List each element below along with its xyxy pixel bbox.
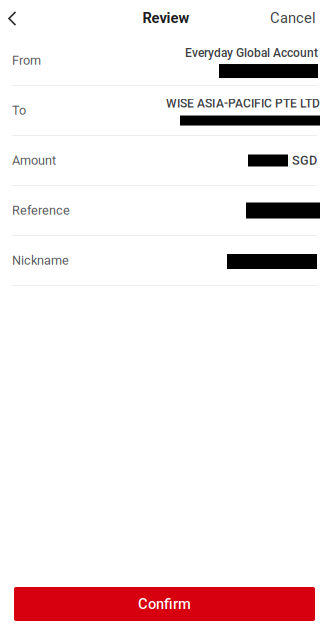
staticText: To (12, 103, 26, 118)
staticText: Nickname (12, 253, 69, 268)
staticText: Reference (12, 203, 70, 218)
staticText: Amount (12, 153, 56, 168)
staticText: Confirm (138, 595, 191, 613)
staticText: WISE ASIA-PACIFIC PTE LTD (166, 96, 320, 111)
staticText: From (12, 53, 41, 68)
staticText: Everyday Global Account (185, 46, 318, 60)
staticText: Cancel (270, 9, 316, 27)
button[interactable]: Back (0, 0, 29, 36)
staticText: Review (142, 9, 189, 27)
button[interactable]: Confirm (14, 587, 315, 621)
staticText: SGD (292, 153, 317, 168)
button[interactable]: Cancel (258, 0, 320, 36)
